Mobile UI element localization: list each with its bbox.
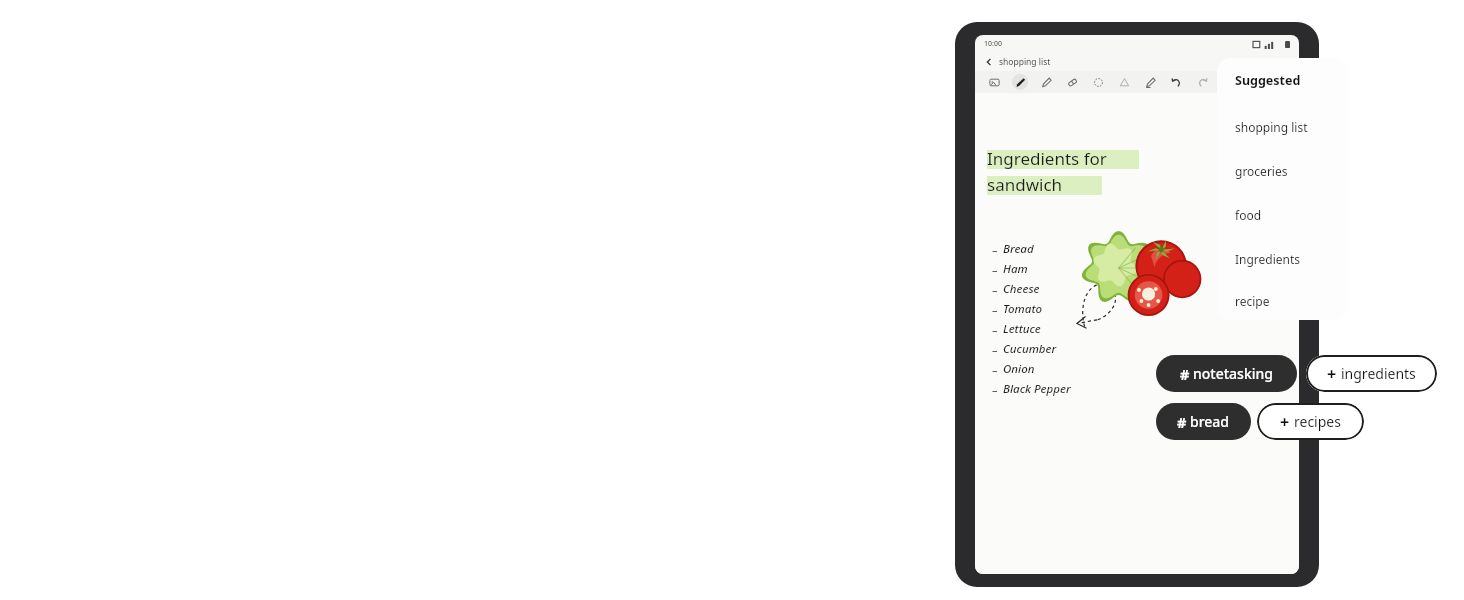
button[interactable]: +	[1306, 355, 1437, 392]
button[interactable]: food	[1235, 193, 1343, 237]
staticText: –	[992, 342, 998, 357]
staticText: Ham	[1003, 261, 1028, 277]
button[interactable]: groceries	[1235, 149, 1343, 193]
staticText: recipe	[1235, 293, 1270, 309]
button[interactable]: Highlighter	[1035, 73, 1057, 91]
button[interactable]: Ingredients	[1235, 237, 1343, 281]
staticText: Lettuce	[1003, 321, 1041, 337]
staticText: +	[1327, 363, 1337, 385]
staticText: Ingredients	[1235, 251, 1301, 267]
button[interactable]: shopping list	[1235, 105, 1343, 149]
staticText: –	[992, 262, 998, 277]
staticText: +	[1280, 411, 1290, 433]
button[interactable]: –	[992, 339, 1057, 359]
button[interactable]: Pen	[1009, 73, 1031, 91]
staticText: –	[992, 282, 998, 297]
button[interactable]: –	[992, 319, 1041, 339]
staticText: –	[992, 242, 998, 257]
staticText: –	[992, 302, 998, 317]
staticText: Onion	[1003, 361, 1035, 377]
staticText: –	[992, 362, 998, 377]
staticText: ingredients	[1341, 364, 1416, 383]
button[interactable]: recipe	[1235, 281, 1343, 320]
staticText: sandwich	[987, 173, 1063, 196]
button[interactable]: #	[1156, 355, 1297, 392]
staticText: food	[1235, 207, 1262, 223]
button[interactable]: Gallery	[983, 73, 1005, 91]
staticText: recipes	[1294, 412, 1341, 431]
staticText: Ingredients for	[987, 147, 1107, 170]
button[interactable]: Shapes	[1113, 73, 1135, 91]
staticText: shopping list	[999, 56, 1051, 68]
button[interactable]: Redo	[1191, 73, 1213, 91]
staticText: –	[992, 382, 998, 397]
button[interactable]: –	[992, 239, 1034, 259]
button[interactable]: –	[992, 379, 1071, 399]
button[interactable]: Back	[975, 53, 1299, 71]
button[interactable]: Back	[983, 56, 995, 68]
button[interactable]: Eraser	[1061, 73, 1083, 91]
button[interactable]: –	[992, 259, 1028, 279]
staticText: notetasking	[1193, 364, 1273, 383]
staticText: 10:00	[984, 39, 1002, 49]
staticText: Bread	[1003, 241, 1034, 257]
staticText: Cheese	[1003, 281, 1040, 297]
button[interactable]: Text	[1217, 73, 1239, 91]
button[interactable]: Marker	[1139, 73, 1161, 91]
staticText: #	[1177, 412, 1187, 432]
staticText: groceries	[1235, 163, 1288, 179]
button[interactable]: Color	[1243, 73, 1265, 91]
button[interactable]: –	[992, 299, 1043, 319]
staticText: shopping list	[1235, 119, 1308, 135]
staticText: bread	[1190, 412, 1230, 431]
button[interactable]: –	[992, 359, 1035, 379]
button[interactable]: –	[992, 279, 1040, 299]
button[interactable]: #	[1156, 403, 1251, 440]
staticText: Tomato	[1003, 301, 1043, 317]
button[interactable]: Lasso select	[1087, 73, 1109, 91]
button[interactable]: +	[1257, 403, 1364, 440]
staticText: #	[1180, 364, 1190, 384]
button[interactable]: Undo	[1165, 73, 1187, 91]
button[interactable]: Suggested	[1235, 72, 1301, 89]
staticText: Black Pepper	[1003, 381, 1071, 397]
staticText: Cucumber	[1003, 341, 1057, 357]
staticText: –	[992, 322, 998, 337]
